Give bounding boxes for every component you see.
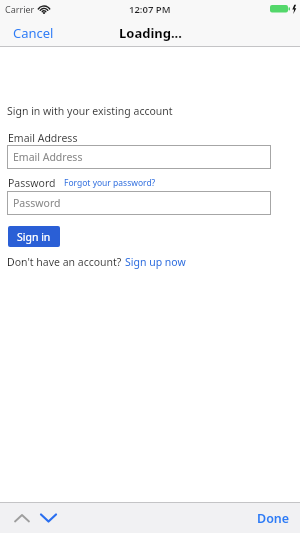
staticText: Forgot your password? <box>64 177 156 189</box>
button[interactable]: Password <box>7 191 271 215</box>
button[interactable]: Done <box>257 510 290 527</box>
staticText: Done <box>257 510 290 527</box>
button[interactable] <box>36 508 60 528</box>
button[interactable]: Email Address <box>7 145 271 169</box>
staticText: Email Address <box>8 131 78 145</box>
staticText: Sign up now <box>125 255 186 269</box>
button[interactable]: Forgot your password? <box>64 177 156 190</box>
staticText: Carrier <box>5 3 35 15</box>
staticText: Password <box>8 176 56 190</box>
button[interactable]: Sign up now <box>125 255 186 269</box>
button[interactable]: Sign in <box>8 226 60 247</box>
staticText: Password <box>13 196 61 210</box>
staticText: Sign in with your existing account <box>7 104 173 118</box>
staticText: Cancel <box>13 24 54 42</box>
staticText: Sign in <box>17 230 51 244</box>
staticText: 12:07 PM <box>129 3 171 16</box>
staticText: Don't have an account? <box>7 255 125 269</box>
button[interactable] <box>10 508 34 528</box>
button[interactable]: Cancel <box>13 24 54 42</box>
staticText: Email Address <box>13 150 83 164</box>
staticText: Loading... <box>119 24 182 42</box>
